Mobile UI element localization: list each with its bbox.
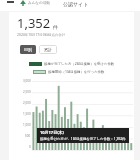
staticText: 件 <box>53 24 58 30</box>
staticText: みんなの活動 <box>28 1 50 6</box>
staticText: 2024年10月17日0時時点の合計 <box>17 32 66 37</box>
staticText: 日別 <box>24 47 32 52</box>
staticText: 接種を受けた方が、1回目接種を完了した件数：1,352件 <box>40 136 126 141</box>
staticText: 3,000 <box>23 79 31 83</box>
staticText: 2,500 <box>23 90 31 94</box>
staticText: 1,000 <box>23 123 31 127</box>
staticText: 接種が完了した方（2回目接種）を受けた件数 <box>44 61 115 66</box>
staticText: 接種開始（1回目接種）を行った件数 <box>48 69 105 74</box>
staticText: 1,352 <box>17 14 51 32</box>
button[interactable]: 累計 <box>39 45 57 54</box>
staticText: 累計 <box>44 47 52 52</box>
staticText: 公認サイト <box>63 1 89 7</box>
staticText: 10月17日(木) <box>40 130 64 135</box>
staticText: 0 <box>29 145 31 149</box>
button[interactable]: 日別 <box>20 45 36 54</box>
staticText: 1,500 <box>23 112 31 116</box>
staticText: 2,000 <box>23 101 31 105</box>
staticText: 500 <box>25 134 31 138</box>
